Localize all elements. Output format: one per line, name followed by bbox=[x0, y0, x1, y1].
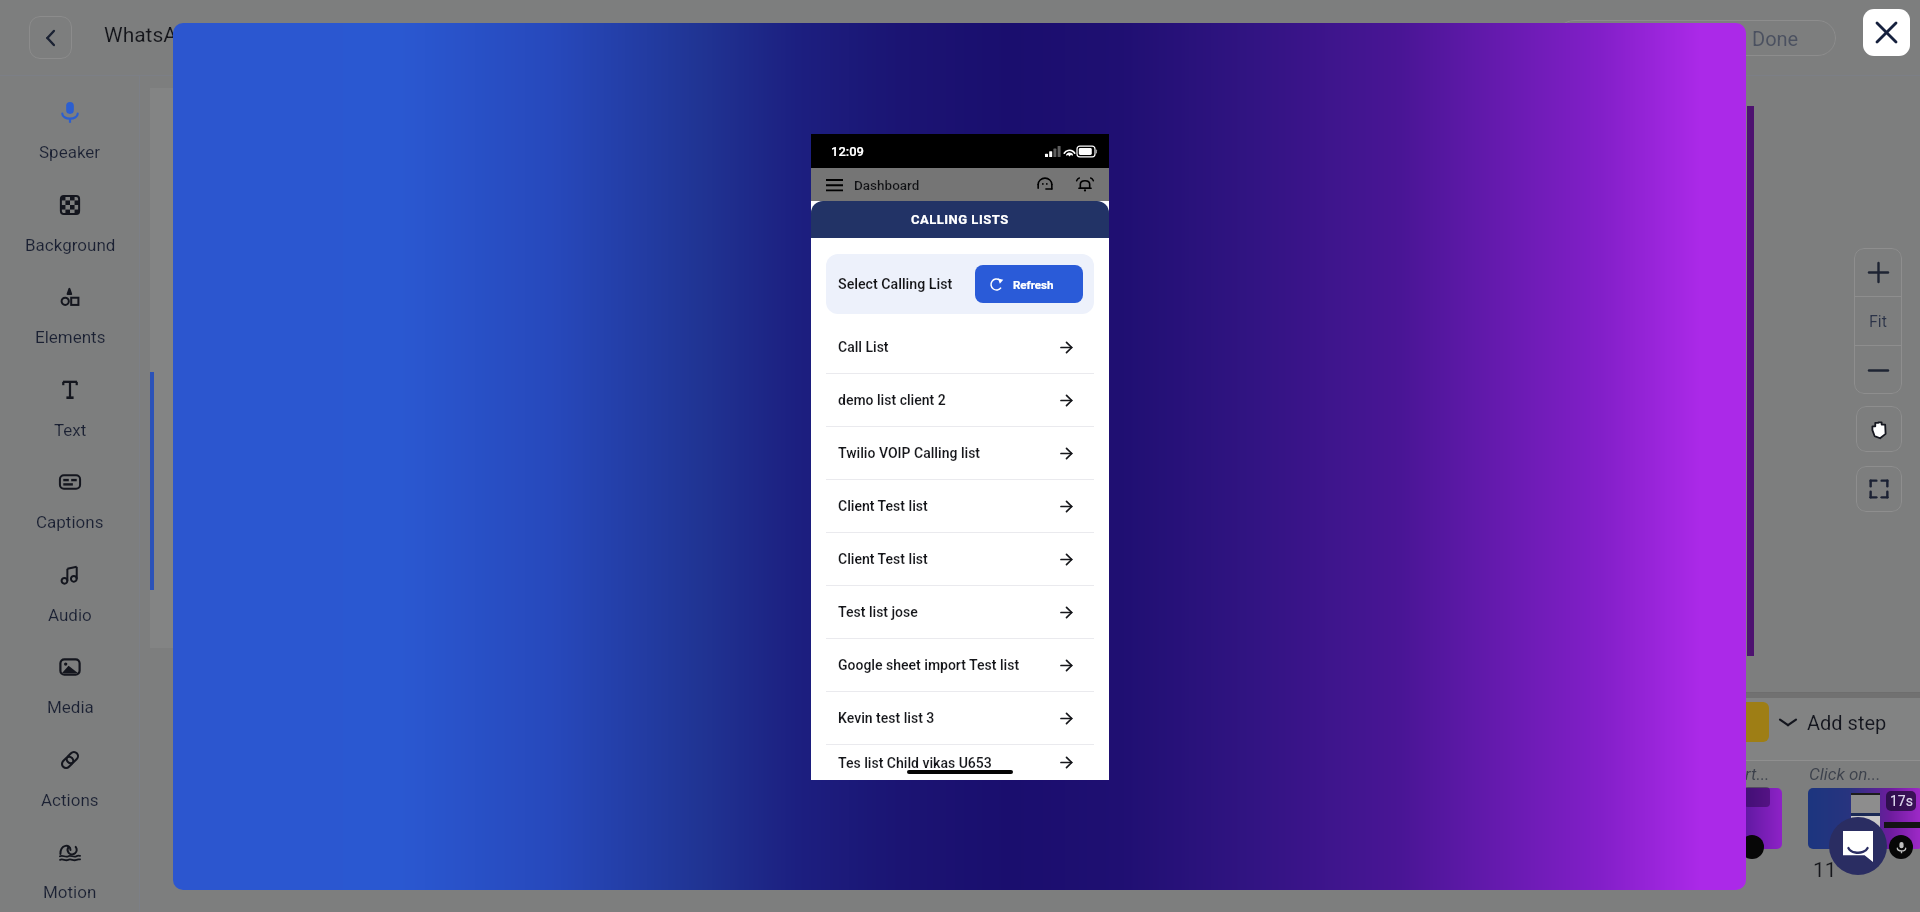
button[interactable]: Zoom out bbox=[1854, 346, 1902, 394]
staticText: demo list client 2 bbox=[838, 392, 946, 408]
staticText: Select Calling List bbox=[838, 276, 953, 293]
staticText: Audio bbox=[48, 605, 92, 625]
button[interactable]: Add step bbox=[1778, 705, 1887, 739]
button[interactable]: Call List bbox=[826, 321, 1094, 373]
staticText: WhatsA bbox=[104, 23, 178, 48]
button[interactable]: Chat bbox=[1829, 817, 1887, 875]
staticText: Refresh bbox=[1013, 278, 1054, 291]
button[interactable]: Text bbox=[0, 378, 140, 440]
staticText: Kevin test list 3 bbox=[838, 710, 935, 726]
staticText: Tes list Child vikas U653 bbox=[838, 755, 992, 771]
staticText: Client Test list bbox=[838, 551, 928, 567]
button[interactable]: Zoom in bbox=[1854, 248, 1902, 296]
button[interactable]: Close bbox=[1863, 9, 1910, 56]
button[interactable]: Done bbox=[1556, 20, 1836, 56]
staticText: Text bbox=[54, 420, 87, 440]
staticText: Google sheet import Test list bbox=[838, 657, 1020, 673]
button[interactable]: Background bbox=[0, 193, 140, 255]
button[interactable]: Menu bbox=[824, 175, 844, 195]
staticText: Captions bbox=[36, 512, 104, 532]
button[interactable]: Test list jose bbox=[826, 586, 1094, 638]
button[interactable]: Media bbox=[0, 655, 140, 717]
staticText: 11 bbox=[1813, 858, 1837, 883]
staticText: Click on... bbox=[1809, 764, 1881, 784]
button[interactable]: Tes list Child vikas U653 bbox=[826, 745, 1094, 780]
staticText: Done bbox=[1752, 27, 1799, 50]
button[interactable]: Elements bbox=[0, 285, 140, 347]
staticText: rt... bbox=[1745, 764, 1770, 784]
staticText: Call List bbox=[838, 339, 889, 355]
staticText: Background bbox=[25, 235, 116, 255]
staticText: Client Test list bbox=[838, 498, 928, 514]
staticText: Dashboard bbox=[854, 177, 920, 193]
staticText: Twilio VOIP Calling list bbox=[838, 445, 981, 461]
button[interactable]: Client Test list bbox=[826, 480, 1094, 532]
staticText: Actions bbox=[41, 790, 99, 810]
staticText: Motion bbox=[43, 882, 97, 902]
button[interactable]: Google sheet import Test list bbox=[826, 639, 1094, 691]
staticText: 17s bbox=[1890, 793, 1913, 809]
button[interactable]: Pan bbox=[1856, 406, 1902, 452]
staticText: Elements bbox=[35, 327, 106, 347]
staticText: Fit bbox=[1869, 312, 1887, 331]
staticText: 12:09 bbox=[831, 144, 864, 159]
button[interactable]: Notifications bbox=[1074, 174, 1096, 196]
button[interactable]: Fit bbox=[1854, 297, 1902, 345]
button[interactable]: Actions bbox=[0, 748, 140, 810]
staticText: CALLING LISTS bbox=[911, 212, 1009, 227]
button[interactable]: Audio bbox=[0, 563, 140, 625]
button[interactable]: demo list client 2 bbox=[826, 374, 1094, 426]
staticText: Add step bbox=[1807, 711, 1887, 734]
button[interactable]: Kevin test list 3 bbox=[826, 692, 1094, 744]
button[interactable]: Back bbox=[29, 16, 72, 59]
staticText: Media bbox=[47, 697, 94, 717]
staticText: Speaker bbox=[39, 142, 101, 162]
staticText: Test list jose bbox=[838, 604, 918, 620]
button[interactable]: Motion bbox=[0, 840, 140, 902]
button[interactable]: Captions bbox=[0, 470, 140, 532]
button[interactable]: Support bbox=[1034, 174, 1056, 196]
button[interactable]: Refresh bbox=[975, 265, 1083, 303]
button[interactable]: Twilio VOIP Calling list bbox=[826, 427, 1094, 479]
button[interactable]: Fullscreen bbox=[1856, 466, 1902, 512]
button[interactable]: Speaker bbox=[0, 100, 140, 162]
button[interactable]: Client Test list bbox=[826, 533, 1094, 585]
